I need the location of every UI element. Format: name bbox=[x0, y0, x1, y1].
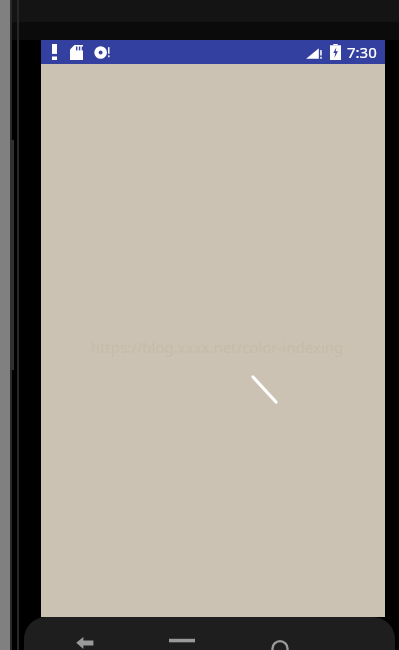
staticText: https://blog.xxxx.net/color-indexing bbox=[45, 337, 389, 357]
staticText: 7:30 bbox=[347, 42, 377, 62]
button[interactable]: Back bbox=[63, 630, 107, 650]
button[interactable]: Recent apps bbox=[258, 630, 302, 650]
button[interactable]: Home bbox=[160, 630, 204, 650]
